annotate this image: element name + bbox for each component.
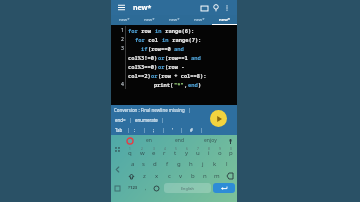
button[interactable]: enjoy [195,135,226,146]
button[interactable]: g [173,158,185,170]
staticText: f [166,160,169,168]
button[interactable]: enumerate [134,117,159,123]
staticText: if [141,45,148,52]
staticText: ?123 [128,185,138,191]
button[interactable]: ?123 [125,183,141,193]
button[interactable]: 1 [124,146,136,158]
staticText: 3 [121,45,124,52]
staticText: r [163,149,166,157]
staticText: i [208,149,210,157]
button[interactable]: b [187,170,199,182]
button[interactable]: # [189,127,194,133]
staticText: m [214,172,220,180]
button[interactable]: Screenshot [112,183,122,193]
button[interactable]: Shift [124,170,138,182]
button[interactable]: new* [187,15,212,24]
button[interactable]: 3 [148,146,159,158]
button[interactable]: 5 [170,146,181,158]
button[interactable]: end [164,135,195,146]
button[interactable]: Emoji [151,183,162,193]
button[interactable]: More options [222,3,232,13]
staticText: w [140,149,145,157]
button[interactable]: m [211,170,223,182]
staticText: 6 [186,147,188,151]
button[interactable]: Back [112,164,122,174]
button[interactable]: c [163,170,175,182]
button[interactable]: l [221,158,233,170]
staticText: o [218,149,222,157]
button[interactable]: 9 [214,146,225,158]
staticText: | [161,117,164,123]
staticText: g [177,160,181,168]
staticText: 3 [153,147,155,151]
button[interactable]: Tab [114,127,124,133]
button[interactable]: 7 [192,146,203,158]
button[interactable]: : [133,127,137,133]
button[interactable]: 6 [181,146,192,158]
button[interactable]: Run [210,110,227,127]
button[interactable]: z [138,170,151,182]
button[interactable]: n [199,170,211,182]
button[interactable]: f [161,158,173,170]
staticText: | [162,127,165,133]
staticText: p [229,149,233,157]
button[interactable]: h [185,158,197,170]
staticText: t [174,149,177,157]
staticText: | [180,127,183,133]
staticText: y [185,149,189,157]
staticText: col==2) [128,72,151,79]
staticText: end= [115,117,126,123]
staticText: ) [198,81,202,88]
button[interactable]: new* [111,15,137,24]
staticText: 4 [164,147,166,151]
button[interactable]: Search [210,2,222,14]
button[interactable]: ; [152,127,156,133]
staticText: 5 [175,147,177,151]
button[interactable]: d [149,158,161,170]
staticText: u [196,149,200,157]
button[interactable]: new* [212,15,237,24]
button[interactable]: v [175,170,187,182]
staticText: h [189,160,193,168]
staticText: z [143,172,146,180]
button[interactable]: Backspace [223,170,236,182]
button[interactable]: 4 [159,146,170,158]
staticText: Conversion : Final newline missing [114,107,185,113]
button[interactable]: 0 [225,146,236,158]
staticText: 2 [141,147,143,151]
button[interactable]: end= [114,117,127,123]
staticText: 1 [129,147,131,151]
staticText: and [174,45,184,52]
button[interactable]: x [151,170,163,182]
button[interactable]: 8 [203,146,214,158]
staticText: or [158,63,165,70]
button[interactable]: a [127,158,138,170]
button[interactable]: en [133,135,164,146]
button[interactable]: Recent apps [112,144,122,154]
staticText: enumerate [135,117,158,123]
staticText: 2 [121,36,124,43]
button[interactable]: s [138,158,149,170]
staticText: | [200,127,203,133]
button[interactable]: English [164,183,211,193]
staticText: end [188,81,198,88]
button[interactable]: Voice input [226,137,234,145]
button[interactable]: ' [171,127,174,133]
button[interactable]: k [209,158,221,170]
button[interactable]: 1 [111,25,237,105]
staticText: 4 [121,81,124,88]
staticText: | [188,107,191,113]
button[interactable]: Enter [213,183,235,193]
staticText: | [129,117,132,123]
staticText: # [190,127,193,133]
button[interactable]: new* [137,15,162,24]
button[interactable]: j [197,158,209,170]
button[interactable]: Menu [116,2,127,13]
button[interactable]: Windows [198,2,210,14]
staticText: (row + col==8): [158,72,207,79]
button[interactable]: 2 [136,146,148,158]
button[interactable]: new* [162,15,187,24]
button[interactable]: Google [126,137,133,144]
button[interactable]: , [141,183,151,193]
